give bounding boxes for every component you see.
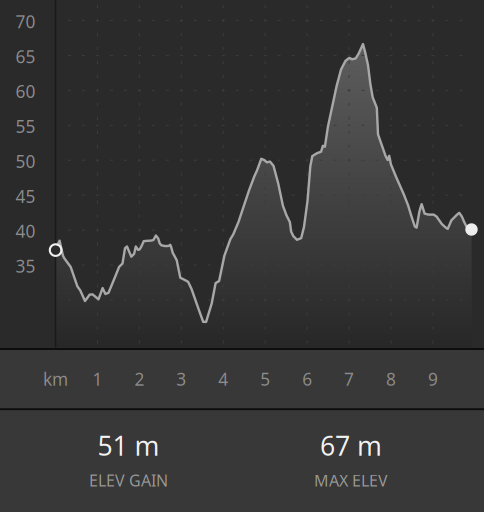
staticText: 1 [92,367,102,390]
staticText: 67 m [320,428,382,463]
staticText: 55 [15,115,35,138]
staticText: 4 [218,367,228,390]
staticText: 65 [15,45,35,68]
staticText: 35 [15,254,35,277]
staticText: km [43,367,68,390]
staticText: 9 [428,367,438,390]
staticText: 40 [15,220,35,243]
staticText: 45 [15,185,35,208]
staticText: 2 [134,367,144,390]
staticText: 6 [302,367,312,390]
staticText: 5 [260,367,270,390]
staticText: 50 [15,150,35,173]
staticText: 7 [344,367,354,390]
staticText: 60 [15,80,35,103]
staticText: MAX ELEV [314,470,388,491]
staticText: 3 [176,367,186,390]
staticText: 8 [386,367,396,390]
staticText: ELEV GAIN [89,470,168,491]
staticText: 70 [15,10,35,33]
staticText: 51 m [97,428,159,463]
